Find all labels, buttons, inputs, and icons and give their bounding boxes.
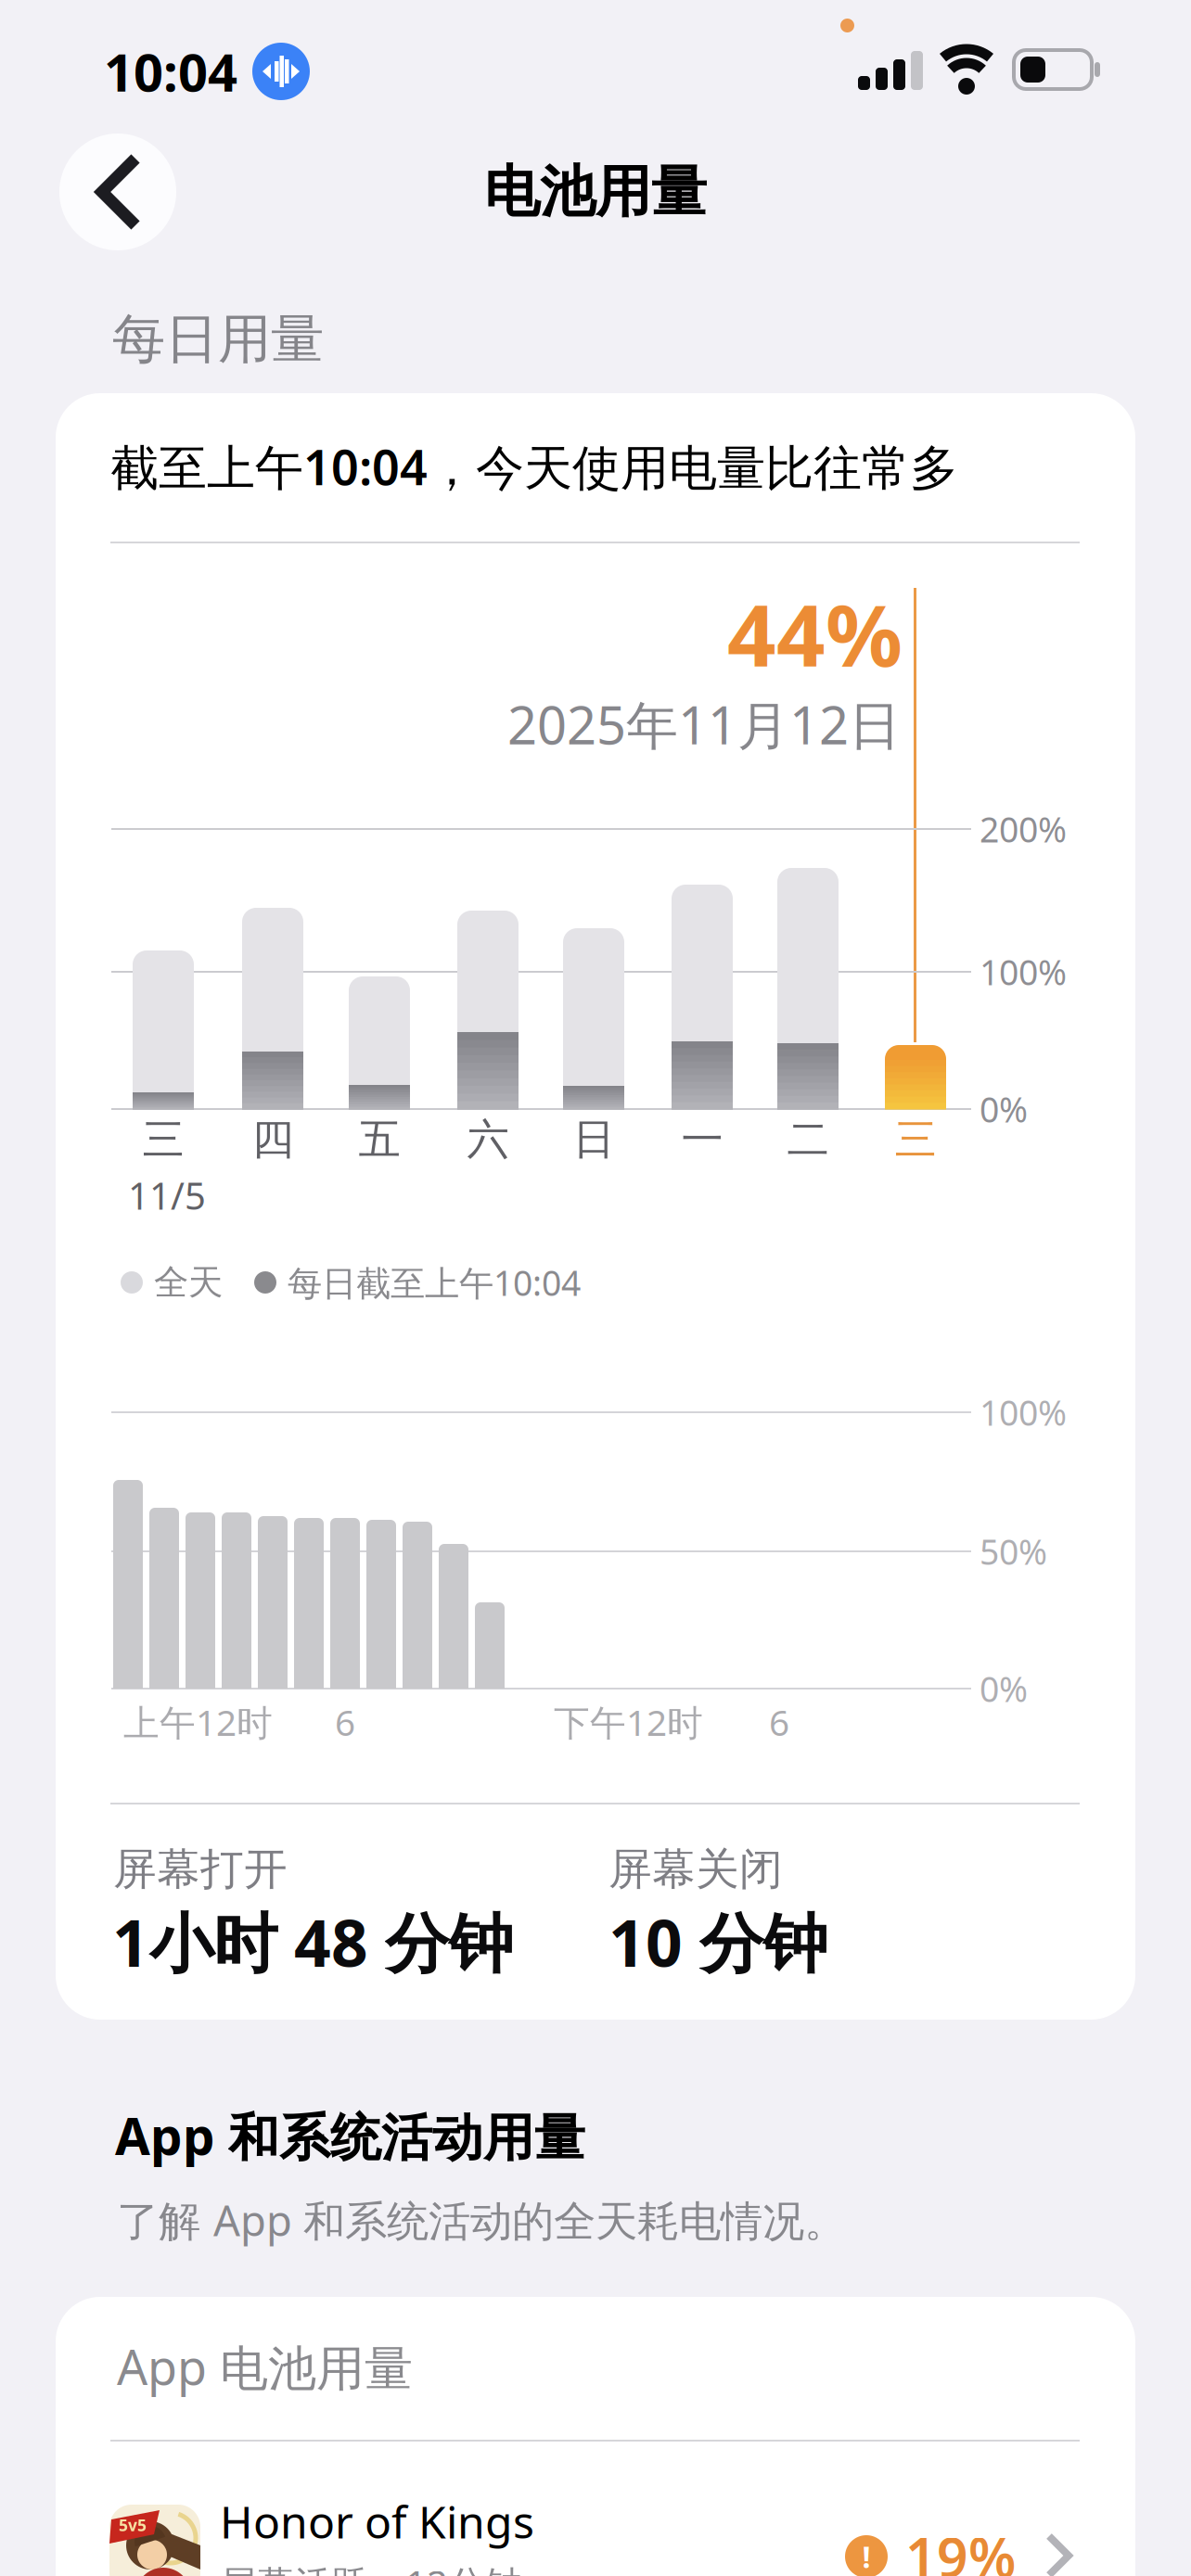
staticText: 10 分钟 [608,1899,827,1984]
staticText: 11/5 [128,1171,206,1220]
staticText: 一 [681,1114,723,1166]
staticText: 屏幕关闭 [608,1843,783,1896]
staticText: 三 [895,1114,936,1166]
staticText: 屏幕打开 [113,1843,288,1896]
staticText: 10:04 [104,37,237,106]
staticText: 三 [142,1114,184,1166]
staticText: 每日用量 [112,307,324,372]
staticText: 电池用量 [484,158,707,226]
staticText: 1小时 48 分钟 [112,1899,513,1984]
staticText: App 电池用量 [117,2334,413,2399]
staticText: 100% [980,1389,1067,1435]
staticText: 上午12时 [123,1698,273,1746]
staticText: 19% [905,2520,1016,2576]
staticText: 2025年11月12日 [507,690,901,759]
staticText: 五 [359,1114,400,1166]
staticText: 截至上午10:04，今天使用电量比往常多 [110,434,958,499]
staticText: 每日截至上午10:04 [288,1259,581,1305]
staticText: 日 [573,1114,615,1166]
staticText: 6 [335,1698,355,1746]
staticText: 44% [727,577,903,690]
staticText: 100% [980,949,1067,995]
staticText: 0% [980,1086,1028,1132]
staticText: 六 [467,1114,509,1166]
staticText: 屏幕活跃：12分钟 [220,2559,522,2576]
staticText: ! [862,2537,871,2576]
button[interactable]: 5v5 [56,2442,1135,2576]
staticText: 5v5 [119,2514,147,2536]
staticText: Honor of Kings [220,2492,534,2551]
button[interactable]: 返回 [59,134,176,250]
staticText: App 和系统活动用量 [115,2102,585,2169]
staticText: 二 [787,1114,829,1166]
staticText: 了解 App 和系统活动的全天耗电情况。 [117,2192,846,2248]
staticText: 全天 [154,1261,223,1304]
staticText: 0% [980,1666,1028,1712]
staticText: 200% [980,806,1067,852]
staticText: 下午12时 [554,1698,703,1746]
staticText: 50% [980,1528,1047,1574]
staticText: 6 [769,1698,789,1746]
staticText: 四 [252,1114,294,1166]
